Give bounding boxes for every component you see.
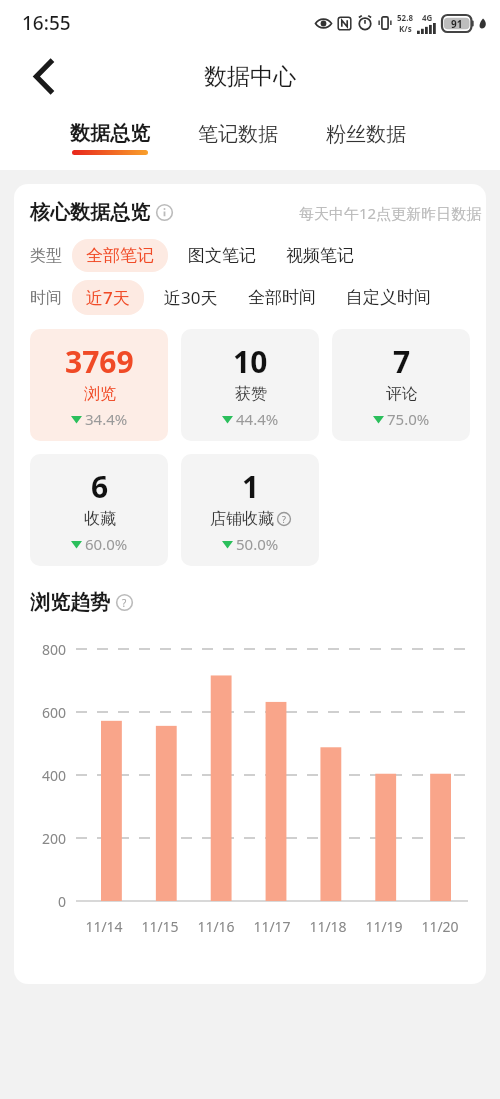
staticText: 52.8 [397, 12, 413, 23]
staticText: 0 [57, 892, 66, 911]
button[interactable]: 7 [332, 329, 470, 441]
button[interactable]: 全部笔记 [72, 239, 168, 272]
staticText: 全部笔记 [86, 245, 154, 266]
staticText: 店铺收藏 [210, 509, 274, 529]
button[interactable]: 视频笔记 [276, 239, 364, 272]
staticText: 75.0% [387, 409, 430, 429]
staticText: 11/20 [421, 917, 459, 936]
button[interactable]: 10 [181, 329, 319, 441]
staticText: 每天中午12点更新昨日数据 [299, 203, 482, 223]
staticText: 7 [393, 341, 411, 382]
staticText: 近7天 [86, 286, 130, 309]
staticText: 数据总览 [70, 121, 150, 146]
staticText: 自定义时间 [346, 287, 431, 308]
staticText: 11/16 [197, 917, 235, 936]
staticText: 近30天 [164, 286, 218, 309]
staticText: 10 [233, 341, 268, 382]
staticText: 11/17 [253, 917, 291, 936]
button[interactable]: 1 [181, 454, 319, 566]
staticText: 评论 [386, 384, 418, 404]
staticText: 全部时间 [248, 287, 316, 308]
staticText: 1 [242, 466, 260, 507]
staticText: 16:55 [22, 10, 71, 36]
staticText: 200 [41, 829, 66, 848]
staticText: 11/14 [85, 917, 123, 936]
button[interactable]: 3769 [30, 329, 168, 441]
staticText: 视频笔记 [286, 245, 354, 266]
button[interactable]: 近30天 [154, 280, 228, 315]
staticText: 400 [41, 766, 66, 785]
staticText: 60.0% [85, 534, 128, 554]
staticText: 800 [41, 640, 66, 659]
staticText: 3769 [65, 341, 134, 382]
staticText: ? [122, 596, 127, 610]
staticText: 浏览 [84, 384, 116, 404]
staticText: 600 [41, 703, 66, 722]
staticText: 44.4% [236, 409, 279, 429]
staticText: 收藏 [84, 509, 116, 529]
button[interactable]: 笔记数据 [194, 120, 282, 157]
button[interactable]: Back [20, 53, 66, 99]
button[interactable]: 自定义时间 [336, 281, 441, 314]
button[interactable]: 6 [30, 454, 168, 566]
button[interactable]: 粉丝数据 [322, 120, 410, 157]
staticText: 核心数据总览 [30, 200, 150, 225]
staticText: 浏览趋势 [30, 590, 110, 615]
staticText: 数据中心 [204, 62, 296, 91]
staticText: 11/18 [309, 917, 347, 936]
staticText: ? [282, 513, 286, 525]
button[interactable]: 全部时间 [238, 281, 326, 314]
staticText: 34.4% [85, 409, 128, 429]
button[interactable]: Help [116, 594, 133, 611]
staticText: 时间 [30, 288, 62, 308]
staticText: 类型 [30, 246, 62, 266]
staticText: 粉丝数据 [326, 122, 406, 147]
staticText: K/s [399, 23, 412, 34]
staticText: 图文笔记 [188, 245, 256, 266]
staticText: 91 [451, 17, 463, 31]
button[interactable]: 图文笔记 [178, 239, 266, 272]
staticText: 50.0% [236, 534, 279, 554]
staticText: 笔记数据 [198, 122, 278, 147]
button[interactable]: 近7天 [72, 280, 144, 315]
staticText: 11/15 [141, 917, 179, 936]
staticText: 11/19 [365, 917, 403, 936]
staticText: 4G [422, 12, 433, 23]
staticText: 获赞 [235, 384, 267, 404]
button[interactable]: 数据总览 [66, 115, 154, 161]
staticText: 6 [91, 466, 109, 507]
button[interactable]: Info [156, 204, 173, 221]
